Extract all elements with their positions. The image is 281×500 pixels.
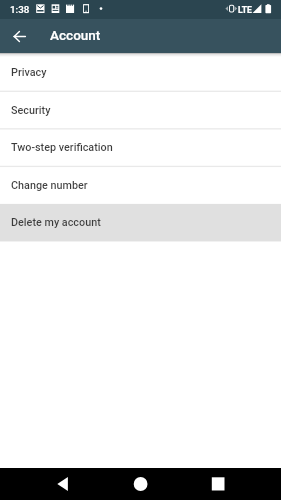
staticText: Two-step verification bbox=[11, 141, 113, 154]
staticText: Delete my account bbox=[11, 216, 101, 229]
button[interactable]: Navigate up bbox=[6, 23, 33, 50]
button[interactable]: Back bbox=[0, 468, 93, 500]
staticText: Privacy bbox=[11, 66, 47, 79]
staticText: Security bbox=[11, 104, 51, 117]
button[interactable]: Change number bbox=[0, 166, 281, 204]
staticText: Account bbox=[50, 27, 101, 43]
button[interactable]: Delete my account bbox=[0, 203, 281, 241]
button[interactable]: Security bbox=[0, 91, 281, 129]
button[interactable]: Home bbox=[93, 468, 187, 500]
staticText: 1:38 bbox=[10, 4, 30, 15]
button[interactable]: Privacy bbox=[0, 53, 281, 91]
staticText: Change number bbox=[11, 179, 88, 192]
staticText: LTE bbox=[238, 5, 252, 15]
button[interactable]: Recent apps bbox=[187, 468, 281, 500]
button[interactable]: Two-step verification bbox=[0, 128, 281, 166]
